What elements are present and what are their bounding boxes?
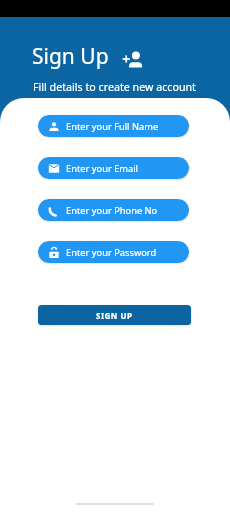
staticText: Fill details to create new account — [33, 80, 196, 95]
staticText: Sign Up — [32, 42, 109, 71]
staticText: Enter your Email — [66, 162, 139, 175]
button[interactable]: Enter your Password — [38, 241, 189, 263]
staticText: Enter your Password — [66, 246, 157, 259]
staticText: SIGN UP — [96, 310, 133, 321]
button[interactable]: Enter your Email — [38, 157, 189, 179]
staticText: Enter your Phone No — [66, 204, 158, 217]
staticText: Enter your Full Name — [66, 120, 159, 133]
button[interactable]: Enter your Phone No — [38, 199, 189, 221]
button[interactable]: SIGN UP — [38, 305, 191, 325]
button[interactable]: Enter your Full Name — [38, 115, 189, 137]
